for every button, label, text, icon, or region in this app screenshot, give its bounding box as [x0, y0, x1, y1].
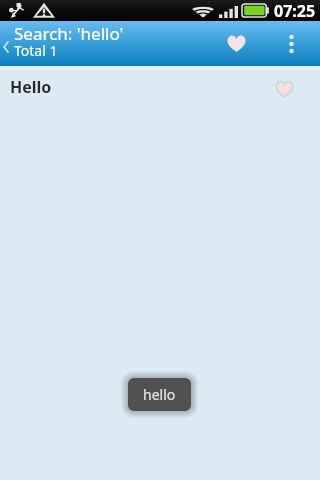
button[interactable]: Hello	[0, 66, 320, 105]
staticText: Hello	[10, 76, 52, 98]
staticText: 07:25	[274, 0, 316, 21]
other: USB connected	[8, 2, 25, 19]
staticText: Search: 'hello'	[14, 22, 124, 45]
other: Warning	[32, 2, 56, 19]
button[interactable]: Favourites	[214, 21, 258, 66]
other: Wi-Fi signal	[192, 4, 214, 17]
button[interactable]: Mark as favourite	[264, 66, 304, 105]
button[interactable]: More options	[270, 21, 312, 66]
other: Battery	[242, 4, 269, 17]
staticText: Total 1	[14, 41, 58, 60]
button[interactable]: Navigate up	[0, 21, 14, 66]
other: Mobile signal	[219, 6, 238, 18]
staticText: hello	[143, 385, 176, 404]
